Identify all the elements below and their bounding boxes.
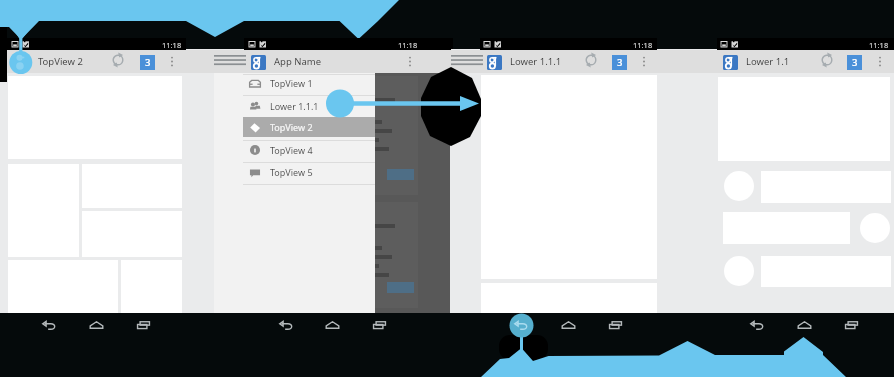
staticText: 11:18 <box>162 40 182 50</box>
button[interactable]: Recents <box>843 317 860 334</box>
button[interactable]: Lower 1.1 <box>746 55 790 68</box>
button[interactable]: More options <box>639 55 649 68</box>
button[interactable]: Refresh <box>110 52 126 68</box>
button[interactable]: More options <box>167 55 177 68</box>
button[interactable]: Google Plus <box>251 55 266 70</box>
button[interactable]: Google Plus <box>487 55 502 70</box>
button[interactable]: Back <box>749 317 766 334</box>
button[interactable]: More options <box>405 55 415 68</box>
staticText: 3 <box>145 56 151 69</box>
button[interactable]: 3 <box>140 55 155 70</box>
button[interactable]: Recents <box>371 317 388 334</box>
staticText: 3 <box>852 56 858 69</box>
button[interactable]: Back <box>513 317 530 334</box>
button[interactable]: Home <box>560 317 577 334</box>
staticText: TopView 4 <box>270 144 313 156</box>
button[interactable]: Open navigation drawer <box>451 55 483 67</box>
button[interactable] <box>243 140 375 160</box>
staticText: TopView 1 <box>270 77 313 89</box>
button[interactable] <box>243 96 375 116</box>
button[interactable]: Google Plus <box>723 55 738 70</box>
button[interactable]: Open navigation drawer <box>214 55 246 67</box>
button[interactable]: More options <box>875 55 885 68</box>
staticText: 11:18 <box>633 40 653 50</box>
staticText: TopView 5 <box>270 166 313 178</box>
button[interactable]: Home <box>796 317 813 334</box>
button[interactable] <box>243 74 375 94</box>
staticText: Lower 1.1.1 <box>270 100 319 112</box>
button[interactable]: Back <box>278 317 295 334</box>
button[interactable]: Refresh <box>819 52 835 68</box>
staticText: 11:18 <box>869 40 889 50</box>
button[interactable]: Back <box>513 317 530 334</box>
staticText: 3 <box>617 56 623 69</box>
staticText: TopView 2 <box>270 121 313 133</box>
button[interactable]: Recents <box>135 317 152 334</box>
button[interactable]: Refresh <box>583 52 599 68</box>
button[interactable]: 3 <box>847 55 862 70</box>
button[interactable] <box>243 118 375 138</box>
button[interactable]: Lower 1.1.1 <box>510 55 562 68</box>
button[interactable]: Home <box>88 317 105 334</box>
staticText: 11:18 <box>398 40 418 50</box>
button[interactable]: Home <box>324 317 341 334</box>
button[interactable]: Back <box>41 317 58 334</box>
button[interactable]: Recents <box>607 317 624 334</box>
button[interactable]: Account <box>11 52 30 71</box>
button[interactable]: App Name <box>274 55 322 68</box>
button[interactable]: TopView 2 <box>38 55 83 68</box>
button[interactable] <box>243 163 375 183</box>
button[interactable]: 3 <box>612 55 627 70</box>
